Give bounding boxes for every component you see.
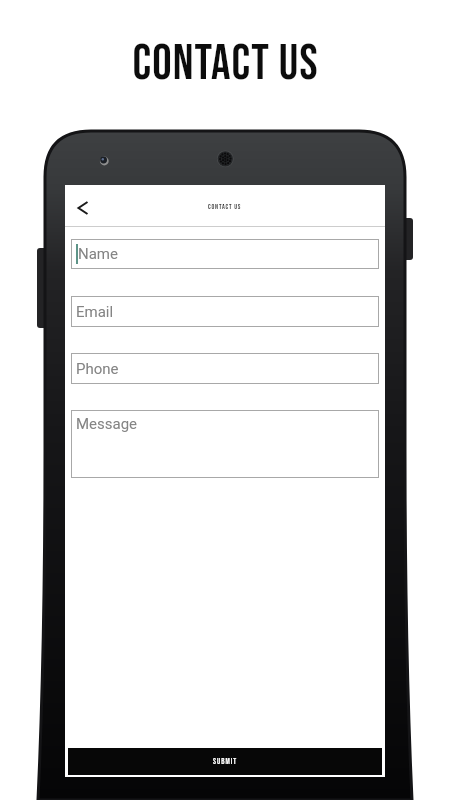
staticText: SUBMIT (213, 757, 238, 767)
staticText: Name (78, 245, 118, 263)
button[interactable]: Name (71, 239, 379, 269)
staticText: CONTACT US (132, 35, 319, 93)
staticText: Email (76, 303, 114, 321)
staticText: Phone (76, 360, 119, 378)
button[interactable]: Email (71, 296, 379, 327)
staticText: CONTACT US (208, 203, 242, 211)
button[interactable]: SUBMIT (68, 748, 382, 775)
button[interactable] (75, 198, 95, 218)
button[interactable]: Message (71, 410, 379, 478)
button[interactable]: Phone (71, 353, 379, 384)
staticText: Message (76, 415, 138, 433)
